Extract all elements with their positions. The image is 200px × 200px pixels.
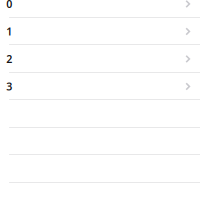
button[interactable]: 0 <box>0 0 200 18</box>
button[interactable]: 3 <box>0 73 200 100</box>
staticText: 0 <box>6 0 12 11</box>
staticText: 1 <box>6 24 12 39</box>
staticText: 3 <box>6 79 12 94</box>
button[interactable]: 2 <box>0 45 200 73</box>
staticText: 2 <box>6 52 12 66</box>
button[interactable]: 1 <box>0 18 200 45</box>
